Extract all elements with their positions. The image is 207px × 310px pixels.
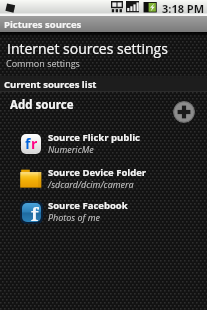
staticText: 3:18 PM [162,1,205,16]
staticText: r [31,134,38,153]
staticText: f [31,203,39,221]
staticText: /sdcard/dcim/camera [48,178,134,190]
staticText: NumericMe [48,143,94,155]
staticText: Source Device Folder [48,166,147,179]
button[interactable]: f [0,195,207,228]
staticText: Add source [10,97,74,113]
staticText: Photos of me [48,211,100,223]
button[interactable]: Add source [0,92,207,129]
staticText: Pictures sources [4,18,82,31]
button[interactable]: Source Device Folder [0,162,207,195]
staticText: Internet sources settings [7,39,168,58]
button[interactable]: Add source [173,101,195,123]
staticText: Current sources list [4,78,97,91]
button[interactable]: f [0,127,207,160]
staticText: Source Facebook [48,199,128,212]
staticText: f [25,134,31,153]
staticText: Common settings [6,57,80,69]
staticText: Source Flickr public [48,131,140,144]
